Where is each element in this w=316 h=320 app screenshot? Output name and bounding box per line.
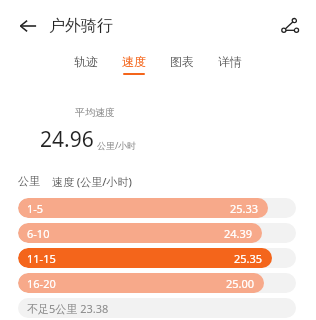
button[interactable]: 图表 (166, 52, 198, 77)
staticText: 6-10 (27, 226, 50, 241)
button[interactable]: Share (272, 8, 308, 44)
staticText: 25.33 (230, 201, 259, 216)
staticText: 1-5 (27, 201, 44, 216)
staticText: 不足5公里 23.38 (27, 301, 109, 316)
button[interactable]: 6-10 (18, 223, 296, 243)
staticText: 轨迹 (74, 54, 98, 69)
staticText: 公里 (18, 174, 40, 188)
staticText: 24.96 (40, 125, 94, 154)
staticText: 速度 (公里/小时) (52, 174, 132, 189)
button[interactable]: 16-20 (18, 273, 296, 293)
button[interactable]: 速度 (118, 52, 150, 77)
button[interactable]: Back (10, 8, 46, 44)
button[interactable]: 详情 (214, 52, 246, 77)
staticText: 25.35 (234, 251, 263, 266)
button[interactable]: 轨迹 (70, 52, 102, 77)
staticText: 11-15 (27, 251, 56, 266)
staticText: 图表 (170, 54, 194, 69)
staticText: 公里/小时 (97, 139, 137, 151)
staticText: 25.00 (226, 276, 255, 291)
staticText: 24.39 (224, 226, 253, 241)
staticText: 平均速度 (75, 106, 115, 119)
button[interactable]: 11-15 (18, 248, 296, 268)
button[interactable]: 1-5 (18, 198, 296, 218)
staticText: 16-20 (27, 276, 56, 291)
button[interactable]: 不足5公里 23.38 (18, 298, 296, 318)
staticText: 速度 (122, 54, 146, 69)
staticText: 户外骑行 (49, 16, 113, 36)
staticText: 详情 (218, 54, 242, 69)
